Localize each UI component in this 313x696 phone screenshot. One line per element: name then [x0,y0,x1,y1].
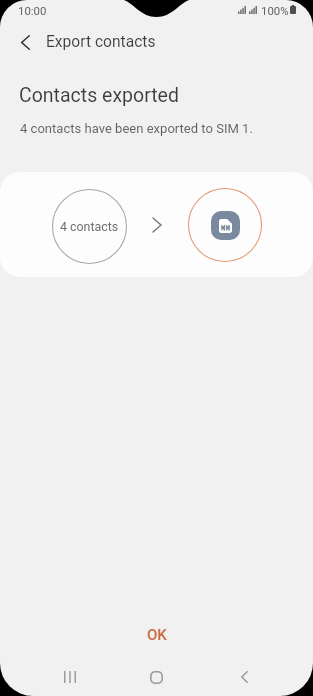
staticText: Contacts exported [19,84,179,107]
staticText: 4 contacts [60,219,119,234]
staticText: 100% [261,4,289,17]
staticText: Export contacts [46,33,156,51]
button[interactable]: Back [5,22,45,62]
button[interactable]: Home [134,656,179,696]
staticText: 4 contacts have been exported to SIM 1. [20,121,253,136]
button[interactable]: OK [0,618,313,652]
button[interactable]: Back [222,656,267,696]
staticText: OK [147,626,167,644]
button[interactable]: Recent apps [47,656,92,696]
staticText: 10:00 [18,4,47,17]
